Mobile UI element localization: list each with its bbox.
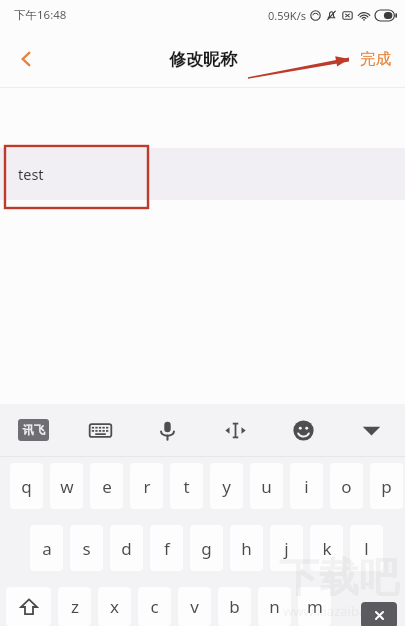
button[interactable]: a (30, 525, 63, 571)
button[interactable]: 关闭 (361, 602, 397, 626)
button[interactable]: t (170, 463, 203, 509)
button[interactable]: 表情 (269, 404, 337, 456)
staticText: 讯飞 (23, 423, 45, 437)
button[interactable]: Shift (6, 587, 51, 626)
staticText: test (18, 164, 44, 184)
button[interactable]: d (110, 525, 143, 571)
button[interactable]: g (190, 525, 223, 571)
staticText: n (269, 595, 280, 618)
button[interactable]: 返回 (0, 33, 52, 85)
staticText: t (183, 475, 190, 498)
button[interactable]: 讯飞输入法 (0, 404, 67, 456)
staticText: z (71, 595, 79, 618)
staticText: k (322, 537, 332, 560)
button[interactable]: e (90, 463, 123, 509)
button[interactable]: p (370, 463, 403, 509)
button[interactable]: f (150, 525, 183, 571)
button[interactable]: l (350, 525, 383, 571)
staticText: x (110, 595, 119, 618)
button[interactable]: y (210, 463, 243, 509)
staticText: 完成 (360, 49, 391, 69)
staticText: r (143, 475, 151, 498)
button[interactable]: 完成 (346, 39, 405, 79)
staticText: v (190, 595, 199, 618)
staticText: i (304, 475, 309, 498)
button[interactable]: u (250, 463, 283, 509)
button[interactable]: o (330, 463, 363, 509)
staticText: a (42, 537, 52, 560)
staticText: o (341, 475, 352, 498)
button[interactable]: 移动光标 (201, 404, 269, 456)
staticText: l (364, 537, 369, 560)
staticText: 下载吧 (279, 552, 399, 602)
staticText: 0.59K/s (268, 8, 306, 23)
button[interactable]: z (58, 587, 91, 626)
staticText: 修改昵称 (169, 49, 237, 70)
button[interactable]: s (70, 525, 103, 571)
button[interactable]: 收起键盘 (337, 404, 405, 456)
staticText: 下午16:48 (14, 7, 67, 23)
button[interactable]: j (270, 525, 303, 571)
button[interactable]: q (10, 463, 43, 509)
staticText: u (261, 475, 272, 498)
staticText: p (381, 475, 392, 498)
button[interactable]: r (130, 463, 163, 509)
button[interactable]: n (258, 587, 291, 626)
staticText: c (150, 595, 159, 618)
staticText: y (222, 475, 231, 498)
button[interactable]: h (230, 525, 263, 571)
button[interactable]: test (0, 148, 405, 200)
staticText: g (201, 537, 212, 560)
staticText: m (307, 595, 323, 618)
staticText: e (102, 475, 112, 498)
staticText: www.xiazaiba.com (283, 602, 396, 620)
button[interactable]: m (298, 587, 331, 626)
staticText: h (241, 537, 252, 560)
button[interactable]: c (138, 587, 171, 626)
button[interactable]: k (310, 525, 343, 571)
button[interactable]: i (290, 463, 323, 509)
staticText: q (21, 475, 32, 498)
button[interactable]: x (98, 587, 131, 626)
staticText: w (60, 475, 74, 498)
button[interactable]: 语音输入 (134, 404, 201, 456)
staticText: f (164, 537, 170, 560)
button[interactable]: 切换键盘 (67, 404, 134, 456)
button[interactable]: b (218, 587, 251, 626)
staticText: s (82, 537, 91, 560)
staticText: j (284, 537, 289, 560)
staticText: d (121, 537, 132, 560)
staticText: b (229, 595, 240, 618)
button[interactable]: v (178, 587, 211, 626)
button[interactable]: w (50, 463, 83, 509)
